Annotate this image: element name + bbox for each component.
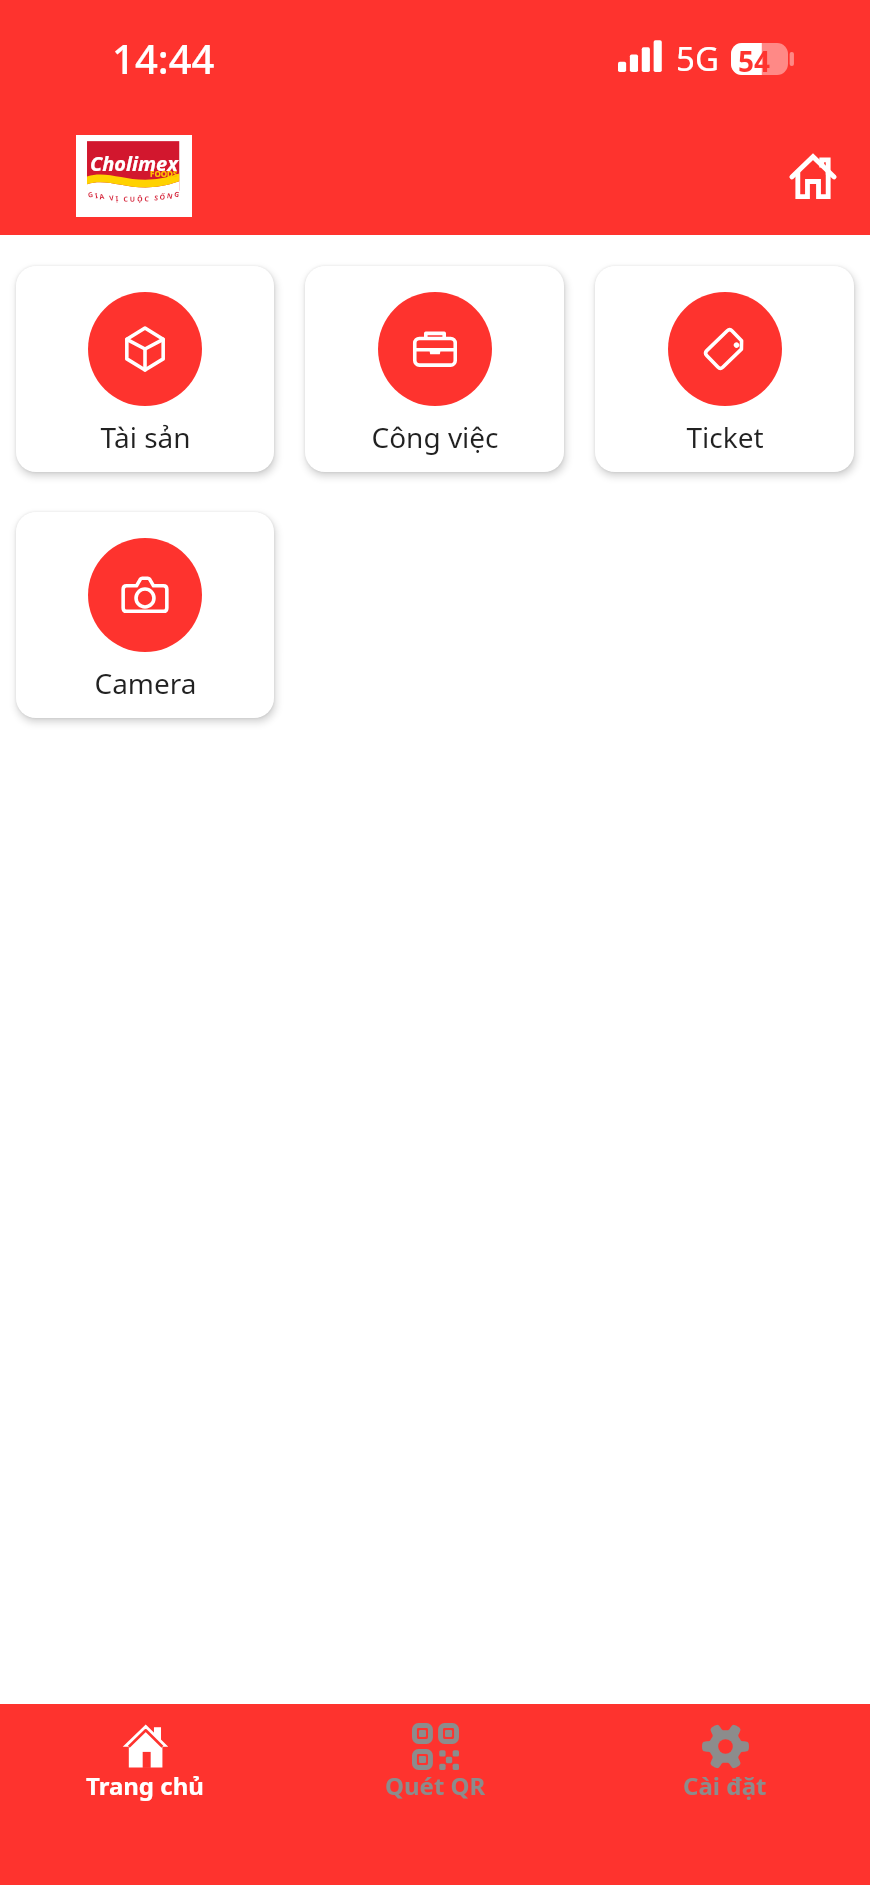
button[interactable]: Cholimex Foods logo <box>76 135 192 217</box>
button[interactable]: Camera <box>16 512 274 718</box>
staticText: Công việc <box>371 418 499 456</box>
button[interactable]: Ticket <box>595 266 854 472</box>
staticText: Camera <box>94 664 197 702</box>
button[interactable]: Tài sản <box>16 266 274 472</box>
staticText: FOODS <box>150 168 178 179</box>
staticText: Trang chủ <box>86 1769 204 1802</box>
staticText: Cholimex <box>90 150 178 177</box>
staticText: 5G <box>676 36 719 81</box>
button[interactable]: Công việc <box>305 266 564 472</box>
button[interactable]: Home <box>785 148 841 204</box>
staticText: Ticket <box>686 418 764 456</box>
button[interactable]: Cài đặt <box>580 1704 870 1803</box>
staticText: Tài sản <box>100 418 191 456</box>
button[interactable]: Trang chủ <box>0 1704 290 1803</box>
staticText: 54 <box>738 42 771 74</box>
button[interactable]: Quét QR <box>290 1704 580 1803</box>
staticText: Quét QR <box>385 1769 486 1802</box>
staticText: Cài đặt <box>683 1769 767 1802</box>
staticText: 14:44 <box>112 31 215 85</box>
